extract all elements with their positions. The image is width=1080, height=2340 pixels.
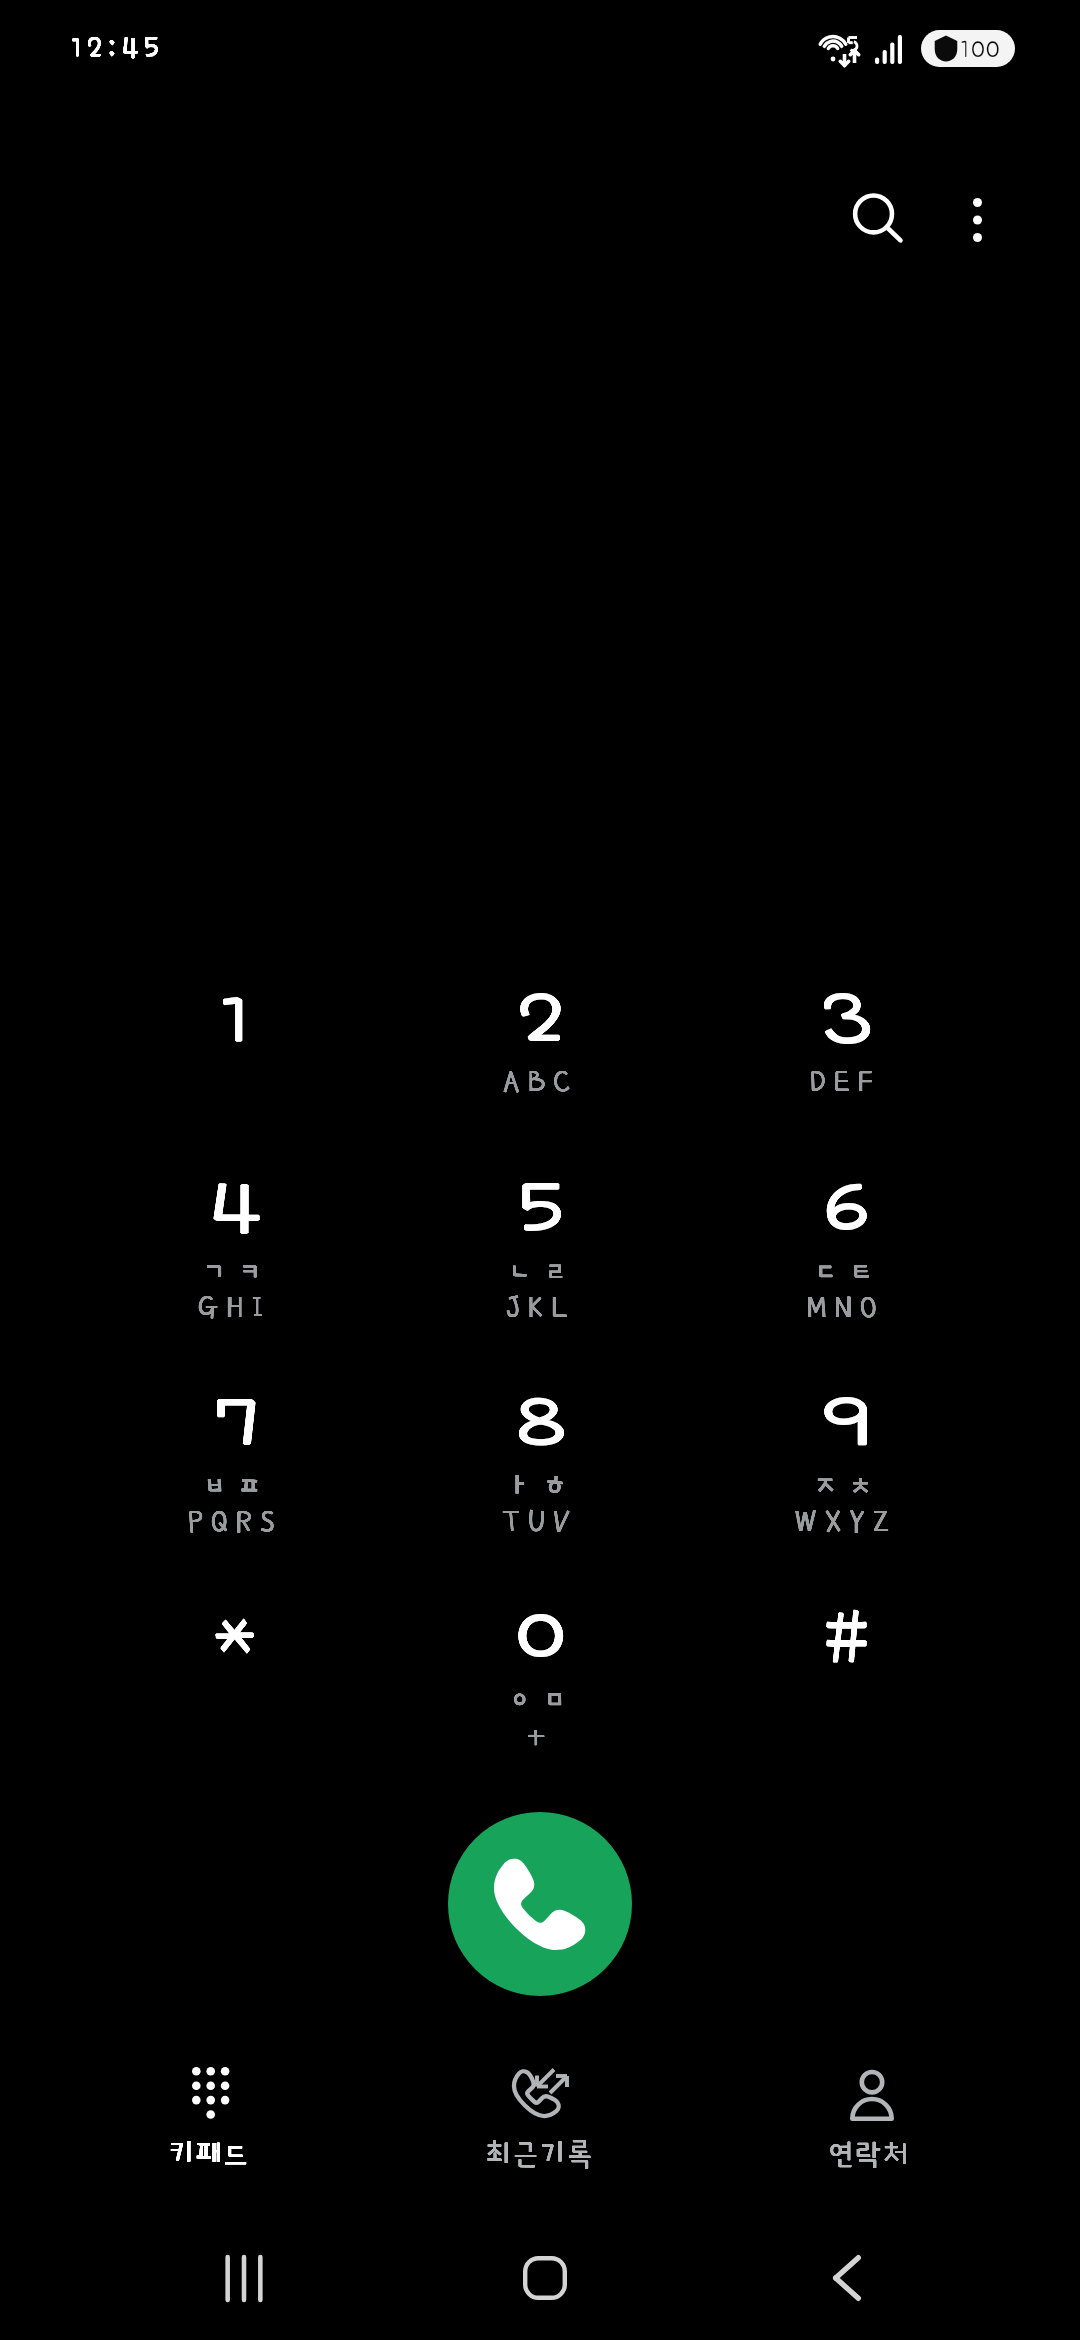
button[interactable]: Call bbox=[448, 1812, 632, 1996]
staticText: 연락처 bbox=[829, 2139, 911, 2169]
staticText: ㅈㅊ bbox=[811, 1468, 882, 1503]
button[interactable]: 최근기록 bbox=[375, 2055, 705, 2185]
button[interactable]: More options bbox=[917, 160, 1037, 280]
staticText: ㄴㄹ bbox=[505, 1254, 576, 1289]
staticText: 1 bbox=[217, 983, 252, 1055]
staticText: 8 bbox=[517, 1385, 565, 1457]
staticText: 최근기록 bbox=[486, 2139, 595, 2169]
staticText: 0 bbox=[517, 1599, 564, 1671]
staticText: GHI bbox=[198, 1292, 272, 1323]
button[interactable]: # bbox=[693, 1599, 998, 1813]
staticText: 5 bbox=[518, 1171, 564, 1243]
button[interactable]: 2 bbox=[388, 983, 693, 1171]
staticText: 3 bbox=[822, 983, 870, 1055]
staticText: * bbox=[214, 1599, 256, 1671]
staticText: MNO bbox=[807, 1292, 885, 1323]
staticText: ㄱㅋ bbox=[200, 1254, 271, 1289]
button[interactable]: 5 bbox=[388, 1171, 693, 1385]
button[interactable]: Home bbox=[500, 2233, 590, 2323]
button[interactable]: 연락처 bbox=[705, 2055, 1035, 2185]
button[interactable]: 키패드 bbox=[45, 2055, 375, 2185]
staticText: 7 bbox=[213, 1385, 258, 1457]
button[interactable]: Back bbox=[802, 2233, 892, 2323]
staticText: + bbox=[527, 1720, 554, 1751]
staticText: ㅏㅎ bbox=[505, 1468, 576, 1503]
staticText: 100 bbox=[960, 35, 1002, 62]
staticText: ABC bbox=[503, 1066, 579, 1097]
button[interactable]: 4 bbox=[82, 1171, 388, 1385]
staticText: 키패드 bbox=[169, 2139, 251, 2169]
staticText: 6 bbox=[826, 1171, 867, 1243]
staticText: DEF bbox=[810, 1066, 882, 1097]
button[interactable]: 0 bbox=[388, 1599, 693, 1813]
button[interactable]: 3 bbox=[693, 983, 998, 1171]
button[interactable]: 8 bbox=[388, 1385, 693, 1599]
staticText: ㅂㅍ bbox=[200, 1468, 271, 1503]
button[interactable]: * bbox=[82, 1599, 388, 1813]
staticText: # bbox=[824, 1599, 868, 1671]
staticText: ㄷㅌ bbox=[811, 1254, 882, 1289]
button[interactable]: 9 bbox=[693, 1385, 998, 1599]
staticText: 4 bbox=[209, 1171, 261, 1243]
button[interactable]: 7 bbox=[82, 1385, 388, 1599]
staticText: 12:45 bbox=[71, 32, 165, 62]
staticText: 9 bbox=[823, 1385, 869, 1457]
staticText: ㅇㅁ bbox=[505, 1682, 576, 1717]
button[interactable]: Recent apps bbox=[199, 2233, 289, 2323]
staticText: 2 bbox=[519, 983, 564, 1055]
button[interactable]: Search bbox=[818, 162, 938, 282]
staticText: TUV bbox=[502, 1506, 579, 1537]
staticText: JKL bbox=[506, 1292, 576, 1323]
staticText: WXYZ bbox=[794, 1506, 898, 1537]
staticText: PQRS bbox=[188, 1506, 283, 1537]
button[interactable]: 6 bbox=[693, 1171, 998, 1385]
button[interactable]: 1 bbox=[82, 983, 388, 1171]
